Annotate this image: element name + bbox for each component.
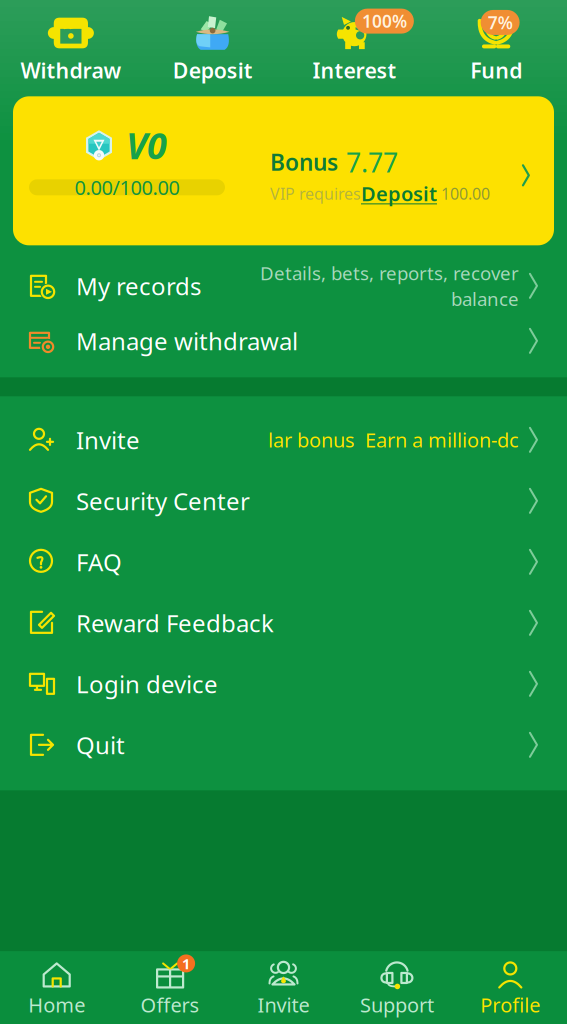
staticText: Deposit — [173, 56, 253, 84]
button[interactable]: 1 — [113, 959, 227, 1018]
button[interactable]: Deposit — [142, 12, 284, 87]
staticText: FAQ — [76, 546, 122, 578]
staticText: Reward Feedback — [76, 607, 274, 639]
staticText: Invite — [257, 991, 309, 1018]
staticText: Withdraw — [20, 56, 121, 84]
button[interactable]: Profile — [454, 959, 567, 1018]
staticText: Deposit — [361, 180, 437, 207]
button[interactable]: Invite — [0, 409, 567, 470]
staticText: Login device — [76, 668, 218, 700]
staticText: Offers — [141, 991, 200, 1018]
button[interactable]: Security Center — [0, 470, 567, 531]
staticText: lar bonus Earn a million-dc — [268, 427, 519, 453]
staticText: Manage withdrawal — [76, 325, 298, 357]
staticText: V0 — [126, 121, 167, 169]
button[interactable]: My records — [0, 255, 567, 316]
staticText: Home — [28, 991, 85, 1018]
staticText: 100% — [362, 10, 407, 33]
staticText: Invite — [76, 424, 140, 456]
staticText: 100.00 — [437, 183, 490, 204]
staticText: Profile — [480, 991, 540, 1018]
staticText: 1 — [182, 954, 190, 973]
staticText: Bonus — [270, 147, 338, 177]
button[interactable]: V0 — [13, 96, 554, 245]
button[interactable]: Support — [340, 959, 454, 1018]
button[interactable]: 7% — [425, 12, 567, 87]
staticText: Support — [360, 991, 434, 1018]
staticText: Fund — [470, 56, 522, 84]
staticText: VIP requires — [270, 183, 361, 204]
staticText: Details, bets, reports, recover — [260, 260, 519, 285]
staticText: 0.00/100.00 — [74, 174, 179, 201]
staticText: 7% — [488, 11, 513, 34]
staticText: My records — [76, 270, 201, 302]
button[interactable]: Login device — [0, 653, 567, 714]
button[interactable]: 100% — [283, 12, 425, 87]
button[interactable]: Home — [0, 959, 113, 1018]
button[interactable]: FAQ — [0, 531, 567, 592]
button[interactable]: Reward Feedback — [0, 592, 567, 653]
staticText: 7.77 — [346, 144, 398, 180]
button[interactable]: Withdraw — [0, 12, 142, 87]
button[interactable]: Invite — [227, 959, 340, 1018]
staticText: balance — [451, 286, 519, 311]
staticText: Quit — [76, 729, 125, 761]
staticText: Interest — [312, 56, 396, 84]
staticText: Security Center — [76, 485, 250, 517]
button[interactable]: Quit — [0, 714, 567, 775]
button[interactable]: Manage withdrawal — [0, 316, 567, 365]
